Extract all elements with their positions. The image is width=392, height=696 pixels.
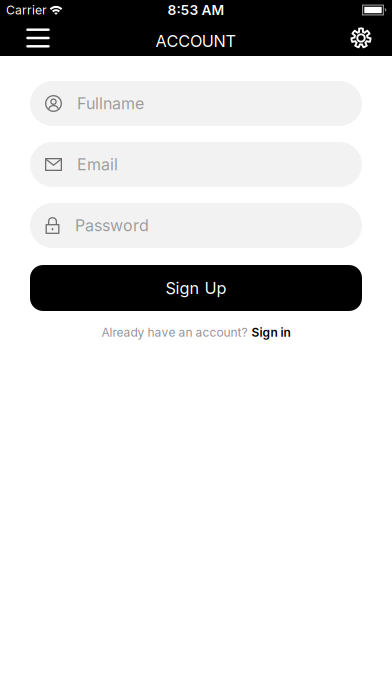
textField[interactable]: Password <box>30 203 362 248</box>
staticText: Sign Up <box>165 278 226 298</box>
staticText: Sign in <box>251 325 290 339</box>
staticText: ACCOUNT <box>156 31 236 51</box>
staticText: 8:53 AM <box>167 2 224 18</box>
textField[interactable]: Email <box>30 142 362 187</box>
button[interactable]: Sign in <box>251 325 290 339</box>
staticText: Fullname <box>77 94 144 113</box>
staticText: Email <box>77 155 118 174</box>
button[interactable]: Menu <box>16 20 60 56</box>
staticText: Password <box>75 216 149 235</box>
button[interactable]: Settings <box>339 20 383 56</box>
button[interactable]: Sign Up <box>30 265 362 311</box>
staticText: Already have an account? <box>101 325 247 339</box>
textField[interactable]: Fullname <box>30 81 362 126</box>
staticText: Carrier <box>6 3 47 17</box>
